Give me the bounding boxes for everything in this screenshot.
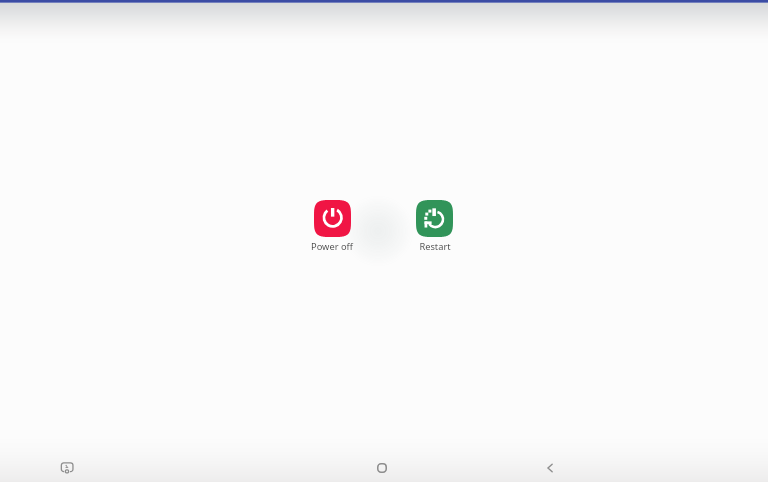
- staticText: Restart: [419, 240, 451, 253]
- staticText: Power off: [311, 240, 353, 253]
- button[interactable]: Restart: [416, 200, 453, 253]
- button[interactable]: Home: [352, 451, 412, 482]
- button[interactable]: Power off: [311, 200, 353, 253]
- button[interactable]: Screenshot: [37, 451, 97, 482]
- button[interactable]: Back: [520, 451, 580, 482]
